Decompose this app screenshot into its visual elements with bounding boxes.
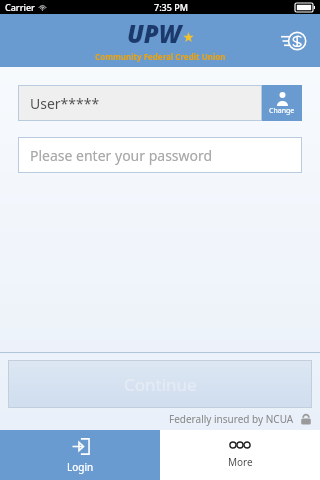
staticText: User*****	[30, 94, 100, 113]
staticText: More	[228, 455, 253, 469]
button[interactable]: Change	[262, 85, 302, 121]
staticText: 7:35 PM	[154, 1, 188, 13]
staticText: Continue	[124, 373, 197, 396]
button[interactable]: More	[160, 430, 320, 480]
staticText: Carrier	[5, 1, 35, 13]
staticText: Please enter your password	[30, 146, 213, 165]
staticText: Federally insured by NCUA	[169, 412, 294, 426]
staticText: Change	[269, 106, 295, 116]
button[interactable]: Rates	[276, 24, 310, 58]
button[interactable]: Login	[0, 430, 160, 480]
button[interactable]: Continue	[8, 360, 312, 408]
staticText: Community Federal Credit Union	[95, 51, 226, 62]
button[interactable]: Please enter your password	[18, 137, 302, 173]
staticText: Login	[67, 460, 94, 474]
button[interactable]: User*****	[18, 85, 262, 121]
staticText: UPW	[127, 17, 182, 50]
